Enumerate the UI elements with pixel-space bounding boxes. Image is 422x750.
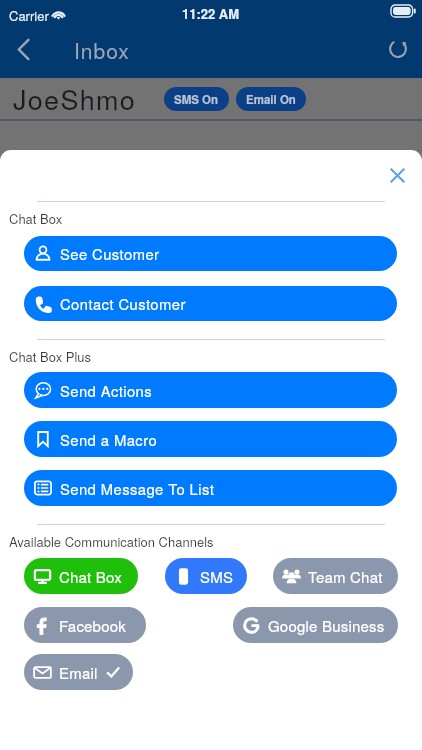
staticText: Google Business: [268, 615, 385, 636]
staticText: Contact Customer: [60, 293, 186, 314]
staticText: Send Actions: [60, 380, 153, 401]
button[interactable]: Chat Box: [24, 558, 138, 594]
staticText: Chat Box: [9, 209, 63, 228]
button[interactable]: SMS: [165, 558, 247, 594]
staticText: Send Message To List: [60, 478, 215, 499]
staticText: Email: [59, 662, 98, 683]
staticText: Chat Box Plus: [9, 347, 92, 366]
staticText: Inbox: [74, 35, 130, 65]
button[interactable]: Team Chat: [273, 558, 398, 594]
staticText: Send a Macro: [60, 429, 158, 450]
button[interactable]: Google Business: [233, 607, 398, 643]
staticText: JoeShmo: [13, 79, 137, 118]
button[interactable]: Send Actions: [24, 372, 397, 408]
button[interactable]: Refresh: [377, 28, 419, 70]
staticText: Email On: [246, 91, 296, 107]
button[interactable]: Contact Customer: [24, 286, 397, 321]
staticText: See Customer: [60, 243, 160, 264]
staticText: SMS: [200, 566, 234, 587]
staticText: SMS On: [174, 91, 219, 107]
button[interactable]: SMS On: [164, 87, 229, 111]
button[interactable]: Facebook: [24, 607, 146, 643]
staticText: Available Communication Channels: [9, 532, 214, 551]
staticText: Team Chat: [308, 566, 383, 587]
button[interactable]: Back: [2, 28, 44, 70]
staticText: Carrier: [9, 6, 49, 25]
staticText: Facebook: [59, 615, 126, 636]
staticText: 11:22 AM: [182, 4, 240, 23]
button[interactable]: Send Message To List: [24, 470, 397, 506]
staticText: Chat Box: [59, 566, 122, 587]
button[interactable]: See Customer: [24, 236, 397, 271]
button[interactable]: Close: [379, 157, 415, 193]
button[interactable]: Send a Macro: [24, 421, 397, 457]
button[interactable]: Email On: [236, 87, 306, 111]
button[interactable]: Email: [24, 654, 133, 690]
